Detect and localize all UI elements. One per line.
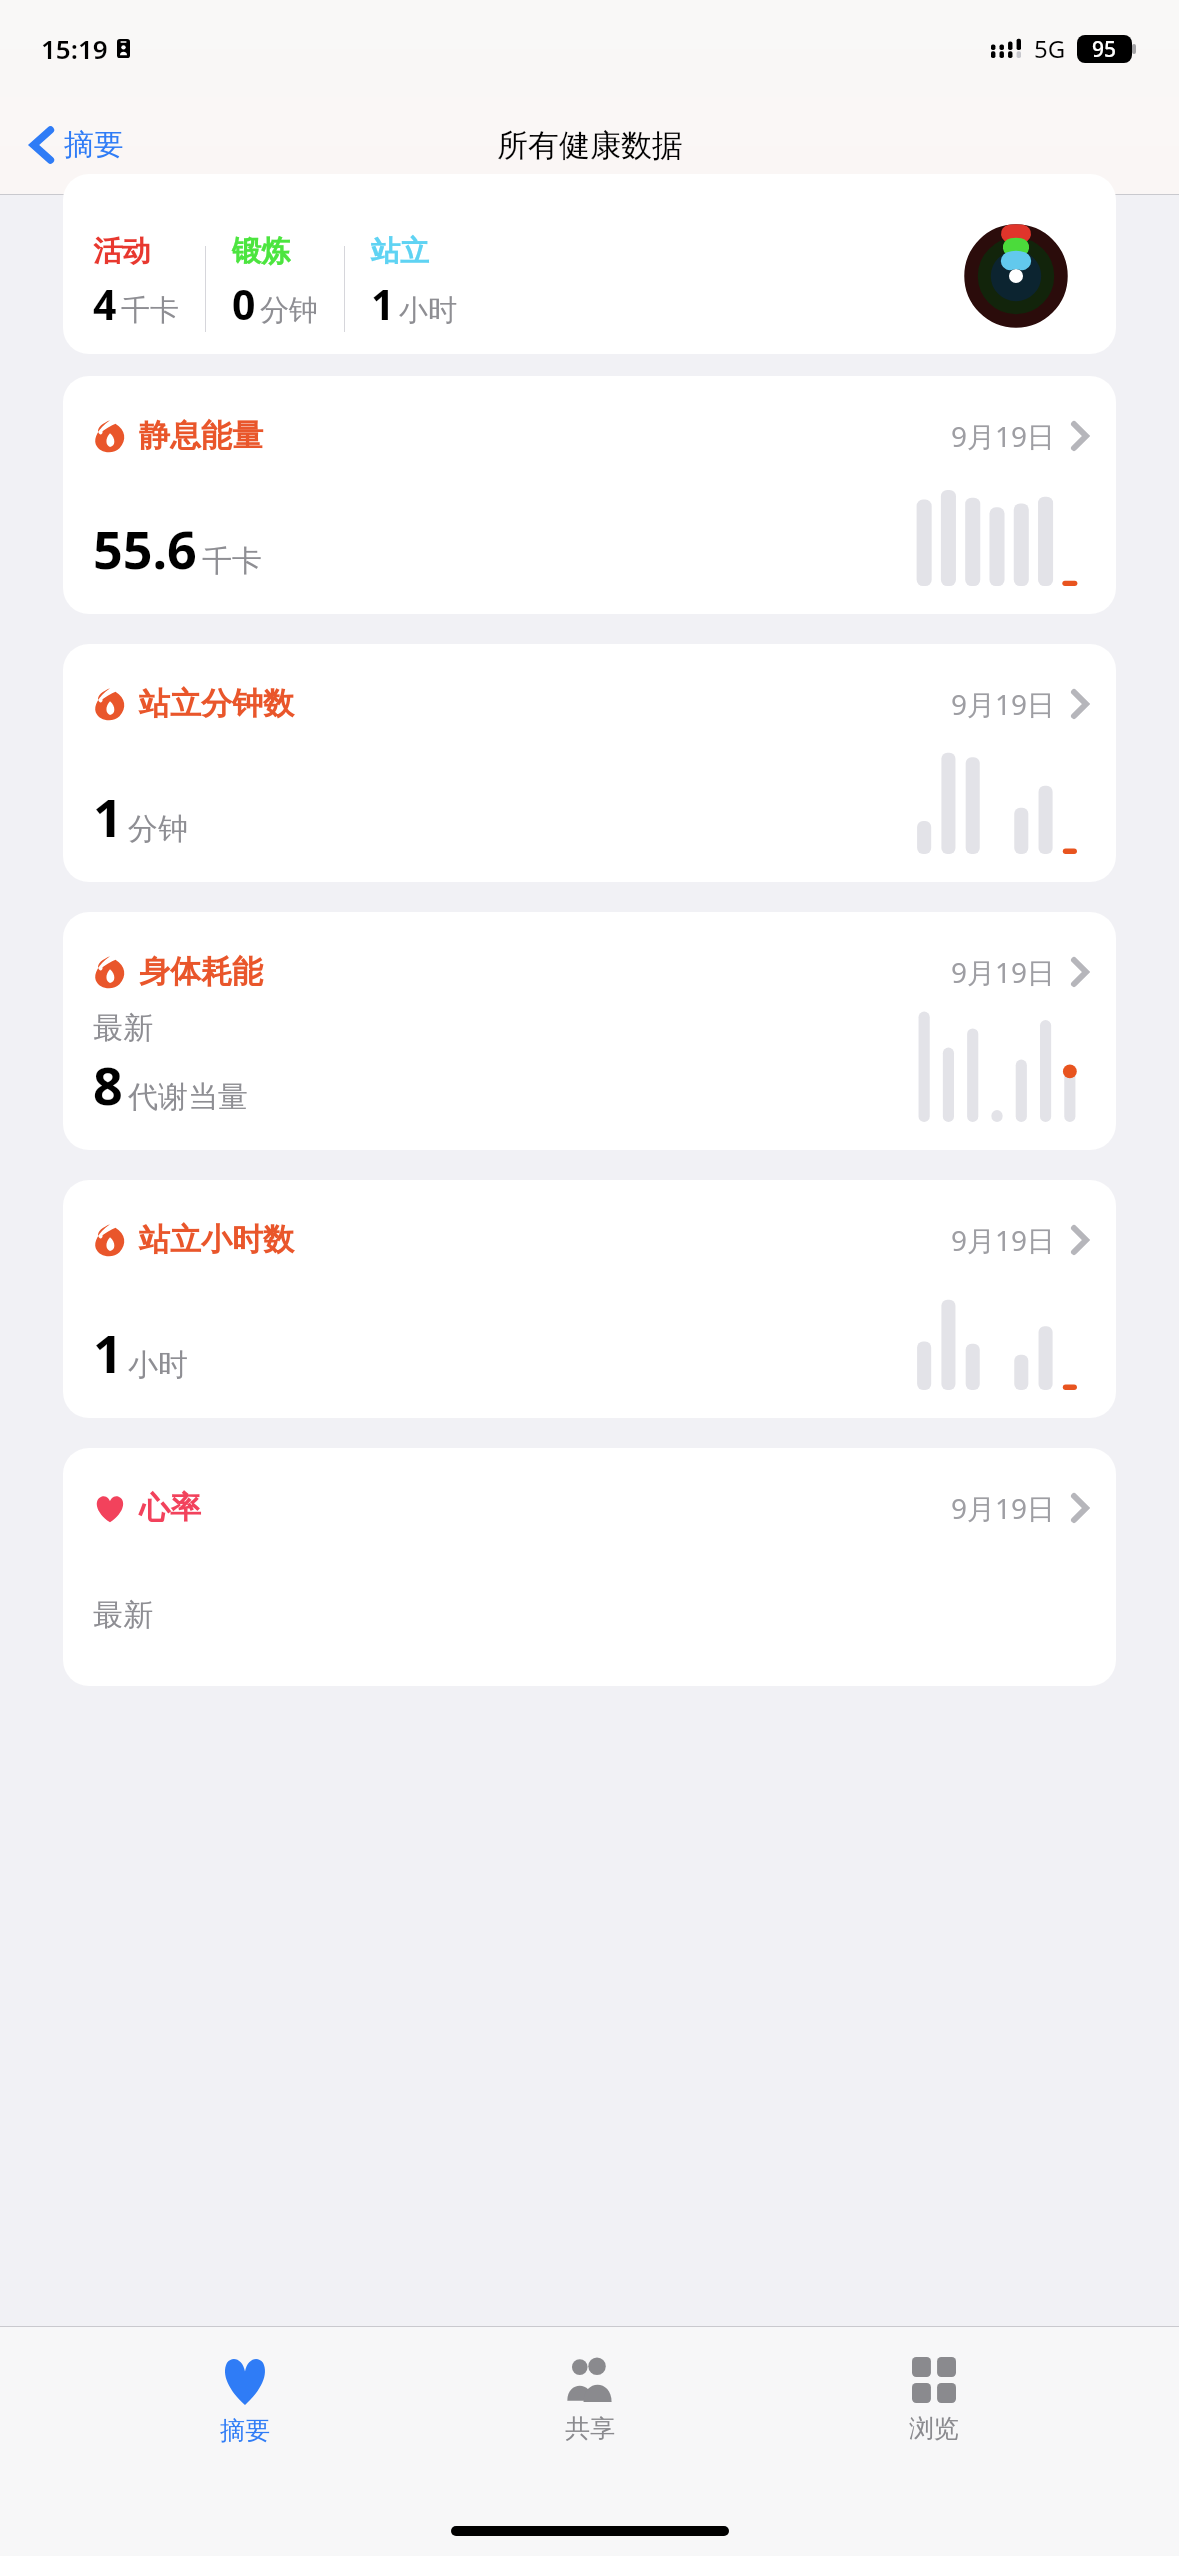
staticText: 浏览 [909,2413,959,2444]
button[interactable]: 静息能量 [63,376,1116,614]
staticText: 0 [232,276,256,332]
staticText: 所有健康数据 [497,126,683,165]
staticText: 静息能量 [139,416,263,455]
staticText: 最新 [93,1009,153,1047]
staticText: 最新 [93,1596,153,1634]
button[interactable]: 浏览 [834,2351,1034,2450]
staticText: 心率 [139,1488,201,1527]
staticText: 9月19日 [951,1489,1056,1527]
button[interactable]: 身体耗能 [63,912,1116,1150]
button[interactable]: 活动 [63,174,1116,354]
staticText: 9月19日 [951,953,1056,991]
staticText: 95 [1092,35,1117,63]
button[interactable]: 站立小时数 [63,1180,1116,1418]
staticText: 分钟 [260,292,318,329]
staticText: 9月19日 [951,1221,1056,1259]
staticText: 千卡 [202,542,262,580]
staticText: 共享 [565,2413,615,2444]
staticText: 15:19 [41,31,108,66]
staticText: 55.6 [93,513,197,584]
button[interactable]: 心率 [63,1448,1116,1686]
button[interactable]: 站立分钟数 [63,644,1116,882]
staticText: 1 [371,276,395,332]
staticText: 1 [93,1317,123,1388]
staticText: 5G [1034,32,1066,65]
staticText: 9月19日 [951,685,1056,723]
other: 浏览 [912,2357,956,2403]
button[interactable]: 共享 [490,2351,690,2450]
staticText: 摘要 [220,2415,270,2446]
staticText: 站立分钟数 [139,684,294,723]
staticText: 1 [93,781,123,852]
staticText: 9月19日 [951,417,1056,455]
staticText: 站立 [371,233,429,270]
staticText: 小时 [399,292,457,329]
staticText: 身体耗能 [139,952,263,991]
staticText: 锻炼 [232,233,290,270]
staticText: 小时 [128,1346,188,1384]
staticText: 代谢当量 [128,1078,248,1116]
staticText: 千卡 [121,292,179,329]
button[interactable]: 摘要 [22,120,134,170]
staticText: 摘要 [64,126,124,164]
staticText: 8 [93,1049,123,1120]
staticText: 站立小时数 [139,1220,294,1259]
staticText: 4 [93,276,117,332]
other: 摘要 [220,2357,270,2405]
button[interactable]: 摘要 [145,2351,345,2452]
other: 共享 [563,2357,617,2403]
staticText: 分钟 [128,810,188,848]
staticText: 活动 [93,233,151,270]
